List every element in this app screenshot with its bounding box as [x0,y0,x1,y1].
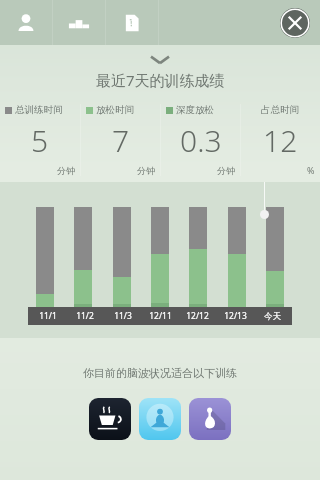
button[interactable]: Help [106,0,158,45]
staticText: % [307,164,315,176]
staticText: 12/11 [149,310,172,322]
button[interactable]: Close [280,8,310,38]
button[interactable] [151,207,169,307]
staticText: 分钟 [137,165,155,176]
staticText: 分钟 [57,165,75,176]
staticText: 你目前的脑波状况适合以下训练 [83,366,237,380]
button[interactable]: Coffee training [89,398,131,440]
staticText: 占总时间 [261,104,299,116]
staticText: 放松时间 [96,104,134,116]
staticText: 11/2 [76,310,94,322]
button[interactable] [74,207,92,307]
staticText: 深度放松 [176,104,214,116]
button[interactable] [36,207,54,307]
staticText: 今天 [264,311,281,322]
button[interactable] [228,207,246,307]
button[interactable]: Leaderboard [53,0,105,45]
staticText: 0.3 [180,120,222,161]
button[interactable] [113,207,131,307]
staticText: 11/3 [114,310,132,322]
staticText: 12 [263,120,298,161]
staticText: 7 [112,120,130,161]
staticText: 分钟 [217,165,235,176]
staticText: 12/13 [224,310,247,322]
button[interactable]: 深度放松 [161,104,240,176]
staticText: 总训练时间 [15,104,63,116]
button[interactable]: Relaxation training [189,398,231,440]
button[interactable] [189,207,207,307]
button[interactable]: 占总时间 [241,104,320,176]
button[interactable]: Meditation training [139,398,181,440]
button[interactable]: Profile [0,0,52,45]
staticText: 5 [31,120,49,161]
staticText: 12/12 [186,310,209,322]
button[interactable]: 放松时间 [81,104,160,176]
button[interactable] [266,207,284,307]
button[interactable]: 总训练时间 [0,104,80,176]
staticText: 最近7天的训练成绩 [96,70,225,90]
staticText: 11/1 [39,310,57,322]
